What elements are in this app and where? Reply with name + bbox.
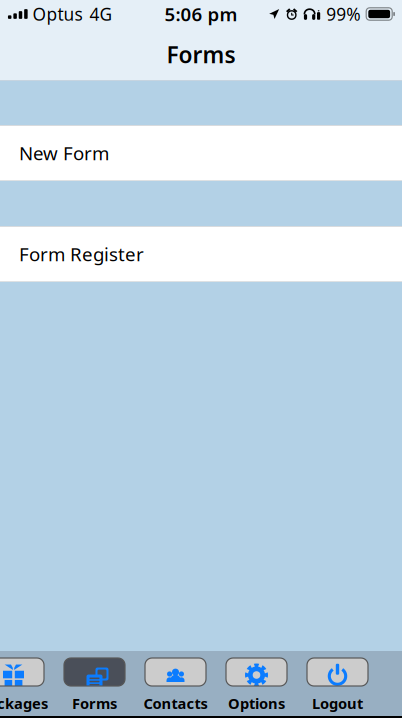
staticText: Form Register [19,242,144,266]
staticText: Contacts [143,693,207,713]
staticText: 4G [90,2,113,25]
staticText: New Form [19,141,109,165]
staticText: Logout [312,693,363,713]
staticText: Forms [166,39,235,69]
button[interactable]: Forms [64,658,125,713]
button[interactable]: New Form [0,125,402,181]
staticText: Options [228,693,285,713]
staticText: Packages [0,693,48,713]
button[interactable]: Packages [0,658,44,713]
button[interactable]: Options [226,658,287,713]
button[interactable]: Contacts [145,658,206,713]
button[interactable]: Form Register [0,226,402,282]
staticText: Forms [72,693,117,713]
staticText: 99% [326,2,360,25]
staticText: Optus [33,2,83,25]
staticText: 5:06 pm [164,2,237,26]
button[interactable]: Logout [307,658,368,713]
